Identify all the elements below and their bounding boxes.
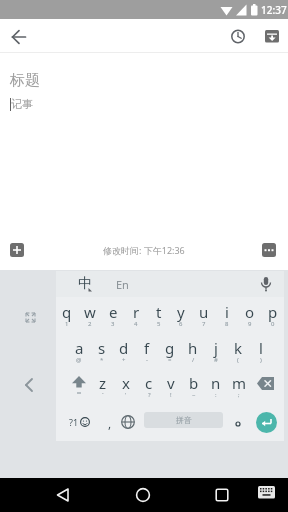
staticText: ` [102, 391, 104, 399]
button[interactable]: 中 [68, 273, 102, 295]
button[interactable]: n [202, 372, 230, 394]
staticText: , [108, 415, 112, 431]
staticText: 2 [88, 320, 92, 328]
button[interactable] [208, 481, 236, 509]
button[interactable] [64, 372, 94, 396]
staticText: p [268, 302, 278, 322]
staticText: t [156, 302, 162, 322]
button[interactable]: ?1 [62, 409, 96, 435]
staticText: e [109, 302, 118, 322]
staticText: i [225, 302, 229, 322]
staticText: r [133, 302, 140, 322]
button[interactable]: m [225, 372, 253, 394]
button[interactable]: , [96, 412, 124, 434]
staticText: ! [170, 391, 172, 399]
staticText: # [214, 356, 218, 364]
staticText: 4 [134, 320, 138, 328]
staticText: b [189, 373, 199, 393]
staticText: q [62, 302, 72, 322]
button[interactable] [16, 373, 42, 397]
staticText: @ [76, 356, 82, 364]
staticText: l [259, 338, 263, 358]
staticText: * [100, 356, 104, 364]
button[interactable]: x [112, 372, 140, 394]
button[interactable]: En [108, 274, 136, 294]
staticText: o [245, 302, 255, 322]
button[interactable]: q [53, 301, 81, 323]
staticText: ?1 [69, 416, 79, 428]
button[interactable] [129, 481, 157, 509]
button[interactable]: k [224, 337, 252, 359]
button[interactable]: a [65, 337, 93, 359]
button[interactable]: g [156, 337, 184, 359]
button[interactable] [256, 412, 277, 433]
button[interactable]: d [110, 337, 138, 359]
button[interactable]: y [167, 301, 195, 323]
staticText: u [199, 302, 209, 322]
staticText: h [188, 338, 198, 358]
staticText: = [168, 356, 172, 364]
button[interactable]: t [145, 301, 173, 323]
button[interactable]: o [236, 301, 264, 323]
staticText: z [99, 373, 107, 393]
staticText: m [232, 373, 247, 393]
staticText: ~ [192, 391, 196, 399]
button[interactable] [258, 22, 286, 50]
button[interactable]: f [133, 337, 161, 359]
button[interactable]: j [202, 337, 230, 359]
staticText: ) [260, 356, 262, 364]
button[interactable]: i [213, 301, 241, 323]
staticText: 9 [248, 320, 252, 328]
staticText: 记事 [11, 97, 33, 111]
staticText: 标题 [10, 71, 40, 90]
staticText: / [192, 356, 195, 364]
button[interactable]: 记事 [10, 97, 288, 111]
button[interactable] [116, 411, 140, 435]
button[interactable]: s [88, 337, 116, 359]
button[interactable]: b [180, 372, 208, 394]
button[interactable] [262, 243, 276, 257]
staticText: ( [237, 356, 239, 364]
staticText: w [84, 302, 96, 322]
staticText: - [146, 356, 148, 364]
button[interactable]: 拼音 [144, 412, 223, 428]
button[interactable]: z [89, 372, 117, 394]
button[interactable]: p [259, 301, 287, 323]
staticText: x [122, 373, 130, 393]
staticText: 1 [65, 320, 69, 328]
staticText: a [75, 338, 84, 358]
staticText: En [116, 277, 129, 292]
button[interactable]: u [190, 301, 218, 323]
staticText: 5 [157, 320, 161, 328]
staticText: d [119, 338, 129, 358]
staticText: + [122, 356, 126, 364]
staticText: j [214, 338, 218, 358]
button[interactable] [224, 22, 252, 50]
staticText: y [177, 302, 185, 322]
staticText: 12:37 [261, 3, 287, 17]
button[interactable]: 标题 [10, 71, 288, 90]
staticText: : [215, 391, 217, 399]
staticText: 拼音 [176, 415, 192, 425]
button[interactable] [251, 372, 281, 396]
button[interactable]: l [247, 337, 275, 359]
button[interactable]: r [122, 301, 150, 323]
staticText: ' [125, 391, 127, 399]
button[interactable]: h [179, 337, 207, 359]
staticText: 修改时间: 下午12:36 [103, 244, 185, 256]
button[interactable]: v [157, 372, 185, 394]
staticText: v [167, 373, 175, 393]
button[interactable]: w [76, 301, 104, 323]
button[interactable] [228, 414, 248, 434]
button[interactable] [10, 243, 24, 257]
staticText: 6 [179, 320, 183, 328]
button[interactable] [49, 481, 77, 509]
staticText: s [98, 338, 106, 358]
button[interactable] [256, 484, 278, 501]
button[interactable]: c [135, 372, 163, 394]
button[interactable]: e [99, 301, 127, 323]
button[interactable] [0, 19, 34, 52]
staticText: n [211, 373, 221, 393]
staticText: 中 [78, 275, 92, 293]
button[interactable] [252, 272, 280, 296]
